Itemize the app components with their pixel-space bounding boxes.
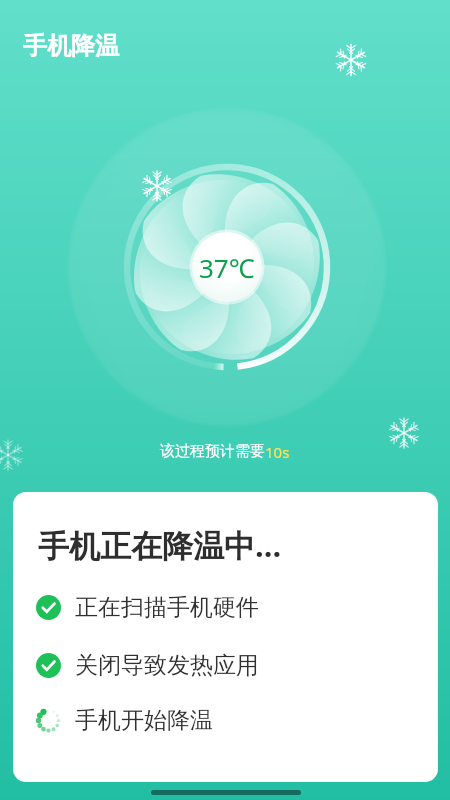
- button[interactable]: 正在扫描手机硬件: [13, 588, 438, 627]
- button[interactable]: 手机降温: [23, 31, 119, 61]
- staticText: 37℃: [199, 250, 255, 285]
- staticText: 手机正在降温中...: [38, 524, 282, 566]
- staticText: 手机开始降温: [75, 706, 213, 735]
- staticText: 该过程预计需要: [160, 442, 265, 461]
- staticText: 关闭导致发热应用: [75, 651, 259, 680]
- button[interactable]: 手机开始降温: [13, 701, 438, 740]
- staticText: 正在扫描手机硬件: [75, 593, 259, 622]
- staticText: 10s: [265, 442, 290, 462]
- staticText: 手机降温: [23, 31, 119, 61]
- button[interactable]: 关闭导致发热应用: [13, 646, 438, 685]
